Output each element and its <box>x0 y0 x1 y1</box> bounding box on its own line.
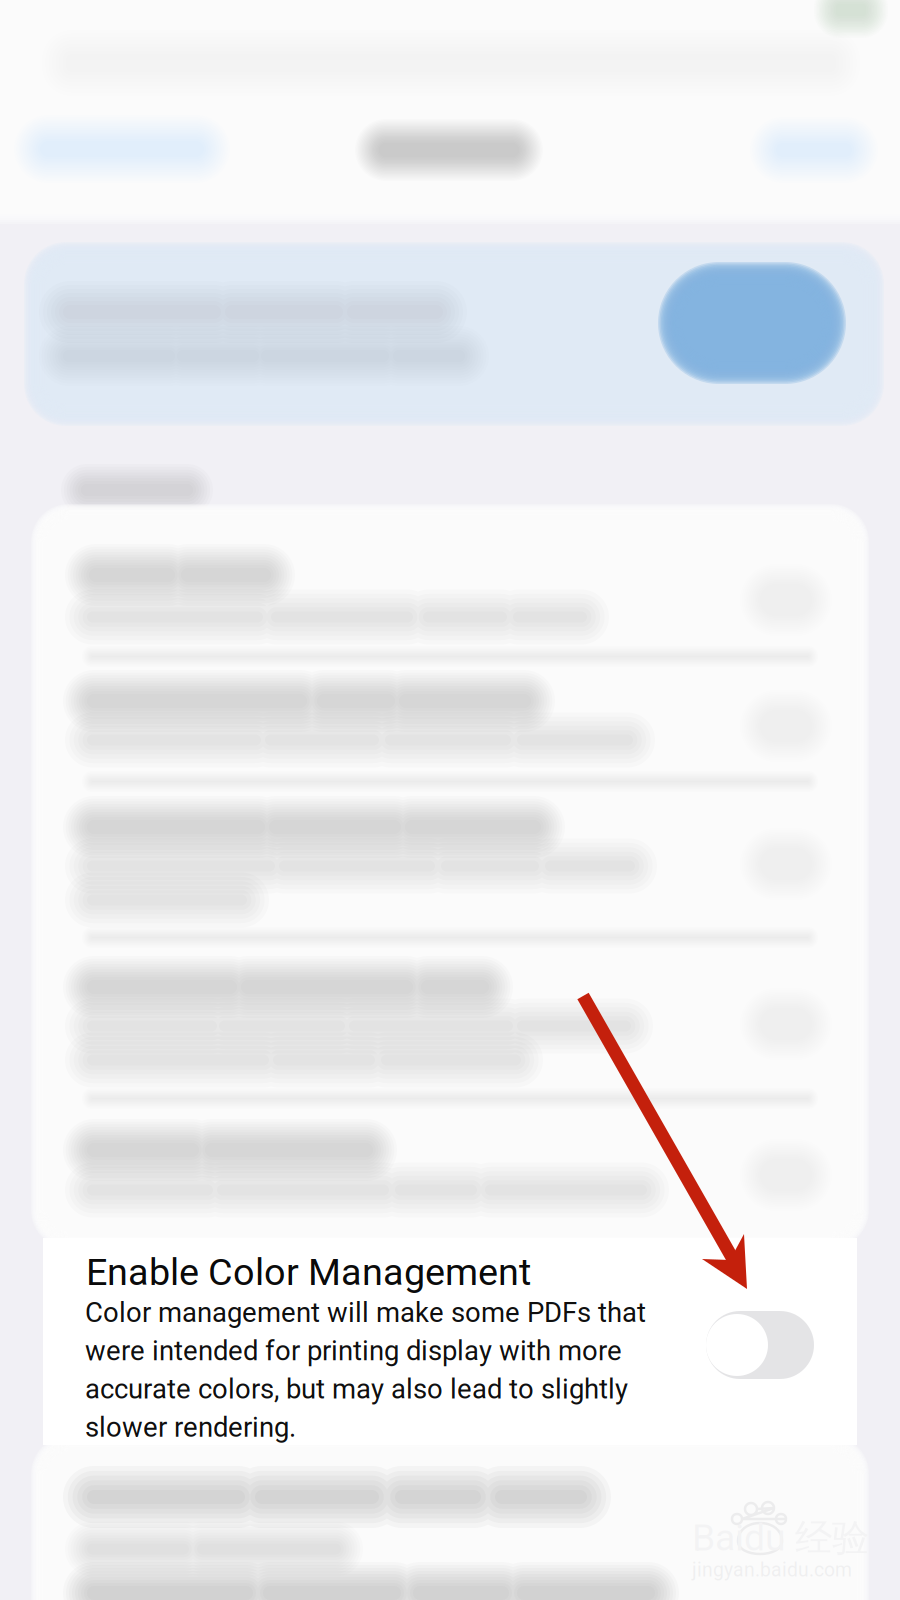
staticText: Baidu 经验 <box>692 1514 869 1561</box>
staticText: Color management will make some PDFs tha… <box>85 1297 646 1443</box>
staticText: Enable Color Management <box>86 1250 531 1294</box>
staticText: jingyan.baidu.com <box>692 1559 852 1581</box>
button[interactable]: Enable Color Management <box>0 0 900 1600</box>
